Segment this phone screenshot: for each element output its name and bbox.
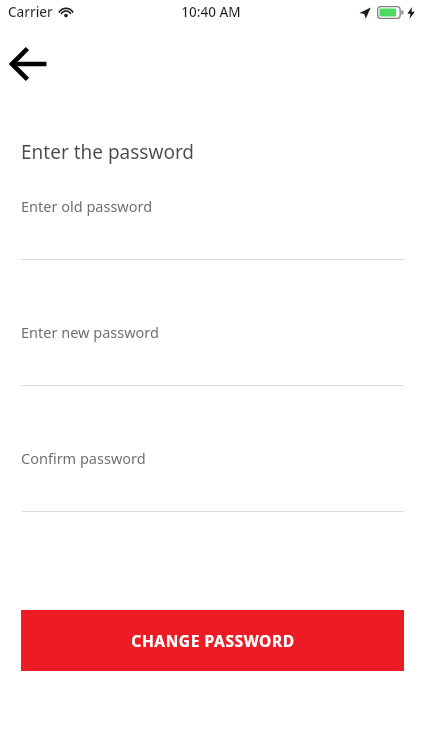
staticText: Carrier [8, 3, 53, 21]
staticText: 10:40 AM [181, 3, 241, 21]
staticText: Enter new password [21, 322, 159, 342]
staticText: CHANGE PASSWORD [131, 630, 295, 651]
staticText: Enter old password [21, 196, 153, 216]
staticText: Confirm password [21, 448, 146, 468]
staticText: Enter the password [21, 139, 195, 165]
button[interactable]: Back [0, 36, 58, 90]
button[interactable]: CHANGE PASSWORD [21, 610, 404, 671]
